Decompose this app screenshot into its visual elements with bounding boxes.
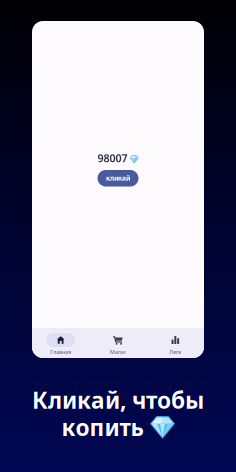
staticText: Магаз xyxy=(110,348,126,356)
button[interactable]: Главная xyxy=(32,328,89,358)
staticText: 98007 xyxy=(98,151,128,165)
staticText: Главная xyxy=(50,348,71,356)
staticText: Кликай, чтобы xyxy=(32,385,204,415)
button[interactable]: Магаз xyxy=(89,328,147,358)
button[interactable]: кликай xyxy=(97,170,138,186)
staticText: кликай xyxy=(106,174,130,183)
staticText: Лиги xyxy=(169,348,181,356)
staticText: копить xyxy=(61,412,143,442)
button[interactable]: Лиги xyxy=(147,328,204,358)
